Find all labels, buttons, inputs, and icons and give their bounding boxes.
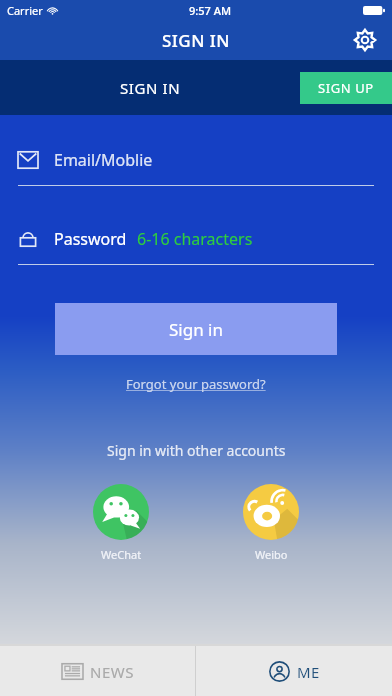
button[interactable]: Password [18, 224, 374, 265]
staticText: SIGN IN [120, 78, 181, 98]
staticText: Sign in with other accounts [107, 441, 286, 460]
staticText: Email/Moblie [54, 149, 153, 171]
staticText: Sign in [169, 318, 223, 341]
button[interactable]: SIGN UP [300, 72, 392, 104]
staticText: NEWS [90, 662, 134, 682]
button[interactable]: Email/Moblie [18, 145, 374, 186]
button[interactable]: Sign in [55, 303, 337, 355]
button[interactable]: Weibo [239, 480, 303, 566]
staticText: Carrier [7, 3, 43, 18]
staticText: Password [54, 228, 127, 250]
button[interactable]: SIGN IN [0, 60, 300, 115]
staticText: 9:57 AM [189, 3, 232, 18]
button[interactable]: NEWS [0, 646, 195, 696]
button[interactable]: WeChat [89, 480, 153, 566]
staticText: SIGN UP [318, 79, 374, 97]
staticText: SIGN IN [162, 29, 231, 52]
button[interactable]: ME [196, 646, 392, 696]
button[interactable]: Settings [348, 23, 382, 57]
staticText: 6-16 characters [137, 228, 253, 250]
staticText: ME [297, 662, 320, 682]
staticText: WeChat [101, 547, 142, 562]
button[interactable]: Forgot your password? [122, 371, 270, 397]
staticText: Weibo [255, 547, 288, 562]
